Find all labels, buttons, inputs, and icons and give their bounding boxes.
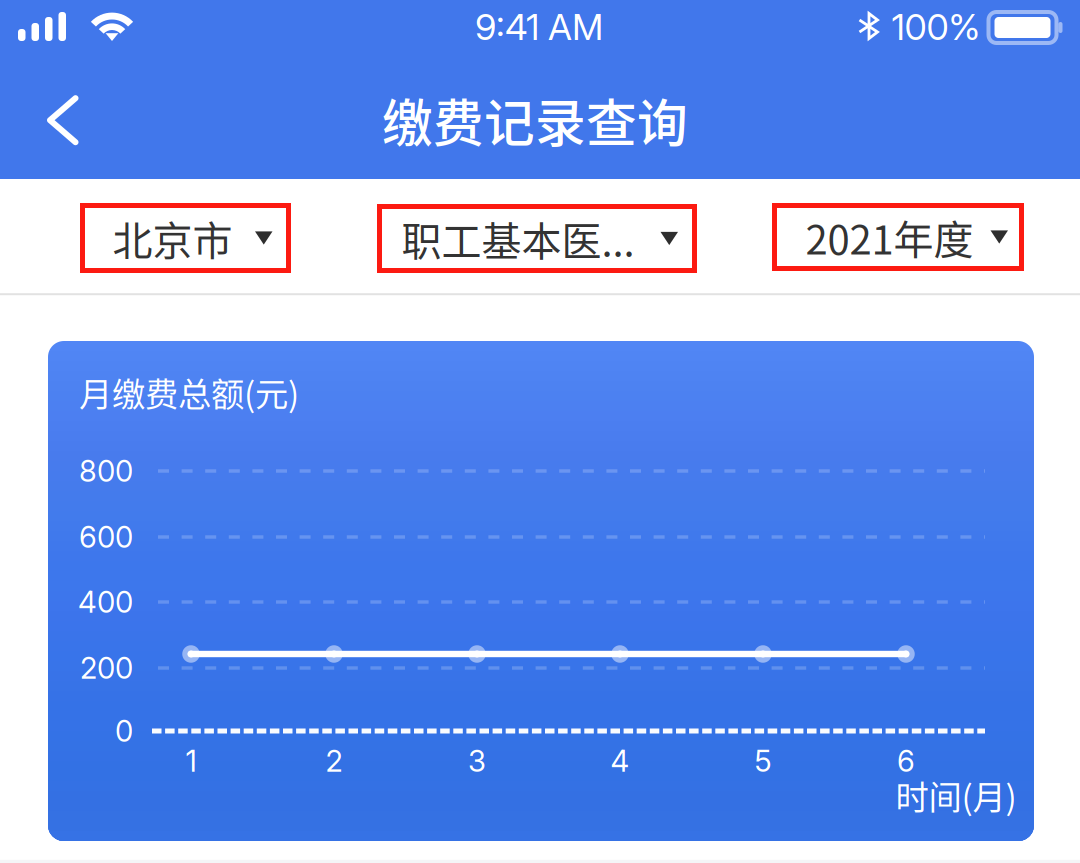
- button[interactable]: 返回: [1, 62, 125, 179]
- staticText: 时间(月): [895, 771, 1016, 819]
- staticText: 800: [79, 453, 133, 489]
- staticText: 6: [897, 743, 915, 779]
- button[interactable]: 北京市: [80, 203, 291, 273]
- button[interactable]: 职工基本医...: [377, 204, 697, 273]
- staticText: 月缴费总额(元): [79, 368, 299, 416]
- button[interactable]: 2021年度: [772, 203, 1024, 271]
- staticText: 北京市: [112, 209, 232, 267]
- staticText: 1: [185, 743, 196, 779]
- staticText: 2: [325, 743, 342, 779]
- staticText: 4: [610, 743, 629, 779]
- staticText: 600: [79, 519, 133, 555]
- staticText: 3: [468, 743, 486, 779]
- staticText: 100%: [891, 5, 980, 49]
- staticText: 职工基本医...: [401, 209, 634, 267]
- staticText: 200: [80, 650, 133, 686]
- staticText: 9:41 AM: [475, 5, 603, 49]
- staticText: 2021年度: [805, 208, 973, 266]
- staticText: 0: [115, 713, 133, 749]
- staticText: 5: [754, 743, 771, 779]
- staticText: 400: [78, 584, 133, 620]
- staticText: 缴费记录查询: [382, 83, 688, 157]
